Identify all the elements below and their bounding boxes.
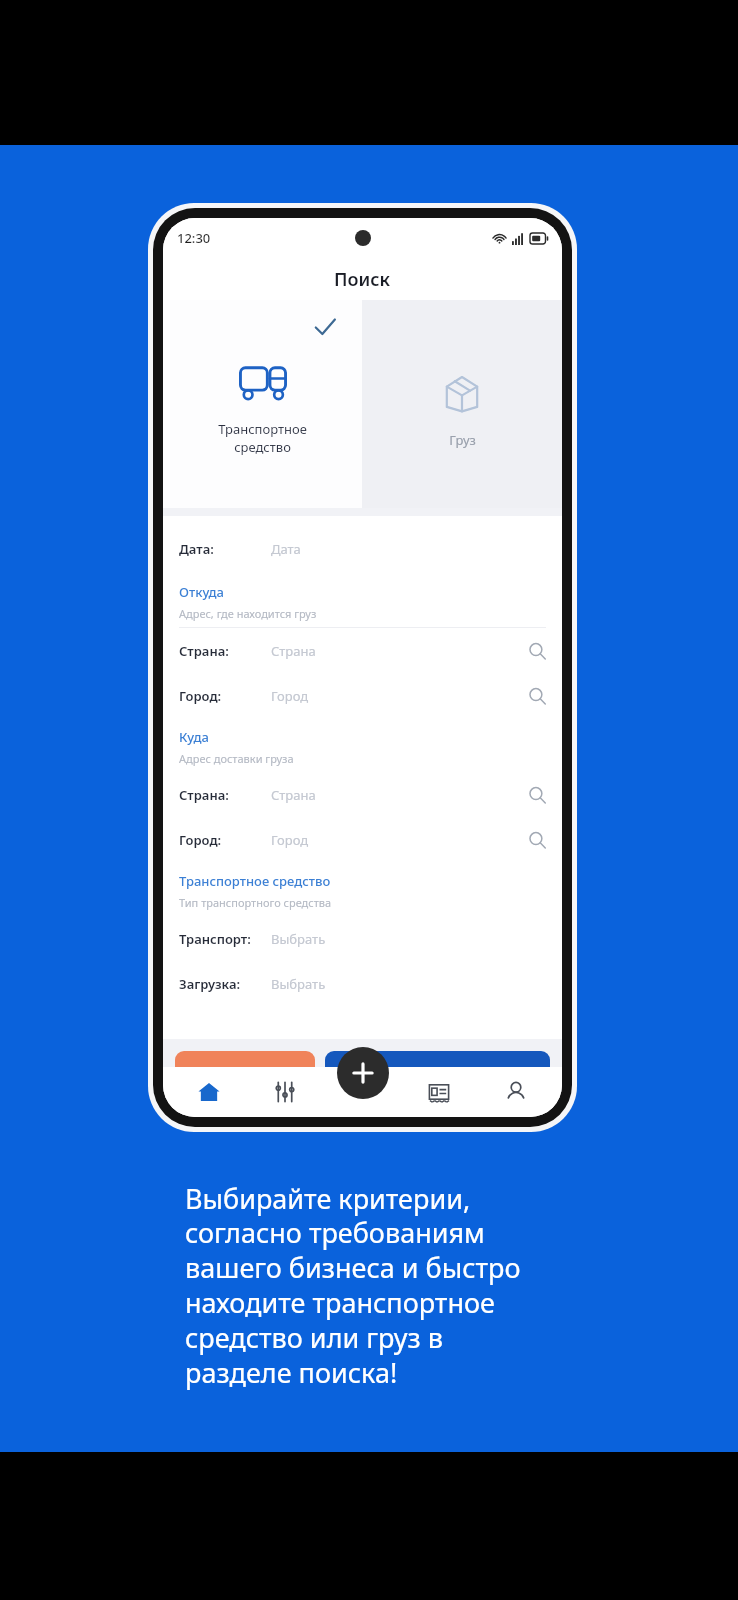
staticText: Транспортное средство xyxy=(218,420,307,456)
staticText: Поиск xyxy=(334,267,391,292)
staticText: Дата xyxy=(271,540,546,558)
button[interactable]: Загрузка: xyxy=(163,961,562,1006)
button[interactable]: Home xyxy=(171,1067,247,1117)
staticText: Адрес, где находится груз xyxy=(179,606,317,621)
staticText: Дата: xyxy=(179,540,271,558)
staticText: Куда xyxy=(179,728,209,746)
button[interactable]: Add xyxy=(337,1047,389,1099)
staticText: Страна xyxy=(271,642,528,660)
staticText: Выбрать xyxy=(271,975,546,993)
button[interactable]: Транспорт: xyxy=(163,916,562,961)
staticText: Транспортное средство xyxy=(179,872,331,890)
staticText: Город: xyxy=(179,687,271,705)
button[interactable]: Дата: xyxy=(163,526,562,571)
staticText: Выбирайте критерии, согласно требованиям… xyxy=(185,1180,718,1391)
button[interactable]: Страна: xyxy=(163,772,562,817)
button[interactable]: Город: xyxy=(163,673,562,718)
staticText: Загрузка: xyxy=(179,975,271,993)
staticText: Адрес доставки груза xyxy=(179,751,294,766)
button[interactable] xyxy=(175,1051,315,1067)
button[interactable]: Город: xyxy=(163,817,562,862)
staticText: Груз xyxy=(449,431,476,449)
button[interactable]: Orders xyxy=(400,1067,477,1117)
button[interactable]: Транспортное средство xyxy=(163,300,362,508)
staticText: Город xyxy=(271,687,528,705)
staticText: Город xyxy=(271,831,528,849)
staticText: Транспорт: xyxy=(179,930,271,948)
button[interactable]: Profile xyxy=(477,1067,554,1117)
button[interactable]: Страна: xyxy=(163,628,562,673)
staticText: Город: xyxy=(179,831,271,849)
staticText: Страна: xyxy=(179,642,271,660)
staticText: Тип транспортного средства xyxy=(179,895,332,910)
staticText: Откуда xyxy=(179,583,224,601)
staticText: 12:30 xyxy=(177,229,211,247)
button[interactable]: Груз xyxy=(362,300,562,508)
staticText: Страна: xyxy=(179,786,271,804)
staticText: Выбрать xyxy=(271,930,546,948)
staticText: Страна xyxy=(271,786,528,804)
button[interactable] xyxy=(325,1051,550,1067)
button[interactable]: Filters xyxy=(247,1067,323,1117)
